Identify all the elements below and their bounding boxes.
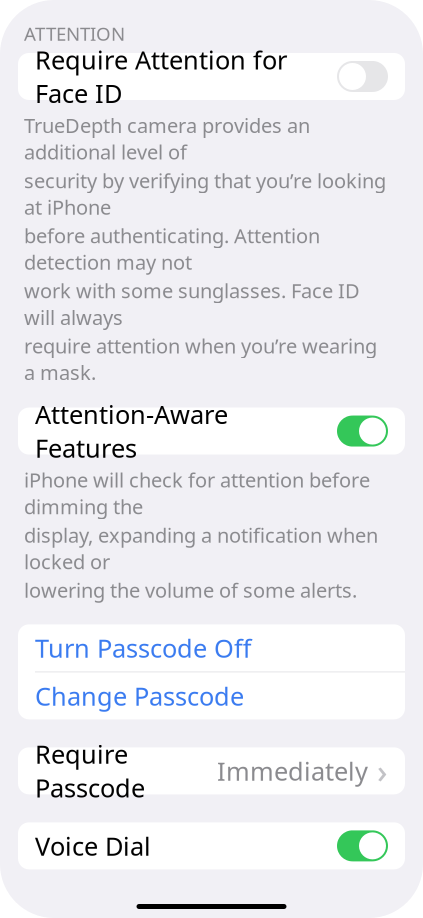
staticText: Attention-Aware Features (35, 397, 228, 465)
staticText: iPhone will check for attention before d… (24, 467, 370, 520)
staticText: require attention when you’re wearing a … (24, 332, 377, 385)
staticText: Voice Dial (35, 829, 151, 863)
button[interactable]: Voice Dial (18, 822, 405, 869)
staticText: security by verifying that you’re lookin… (24, 167, 386, 220)
button[interactable]: Attention-Aware Features (18, 408, 405, 455)
button[interactable]: Change Passcode (18, 672, 405, 719)
button[interactable]: Require Passcode (18, 747, 405, 794)
staticText: Immediately (217, 754, 368, 788)
staticText: lowering the volume of some alerts. (24, 577, 357, 603)
staticText: Require Passcode (35, 737, 145, 804)
button[interactable]: Require Attention for Face ID (18, 53, 405, 100)
staticText: › (377, 750, 387, 792)
staticText: Turn Passcode Off (35, 631, 251, 665)
staticText: Require Attention for Face ID (35, 43, 287, 110)
staticText: work with some sunglasses. Face ID will … (24, 277, 360, 330)
staticText: TrueDepth camera provides an additional … (24, 112, 310, 165)
button[interactable]: Turn Passcode Off (18, 624, 405, 671)
staticText: Change Passcode (35, 679, 244, 713)
staticText: before authenticating. Attention detecti… (24, 222, 320, 275)
staticText: display, expanding a notification when l… (24, 522, 378, 575)
staticText: ATTENTION (24, 21, 125, 46)
